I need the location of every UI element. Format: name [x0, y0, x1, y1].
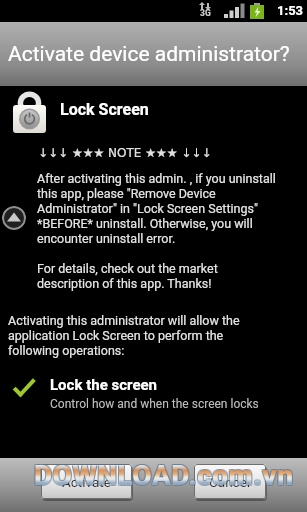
staticText: DOWNLOAD.com.vn	[33, 460, 293, 493]
staticText: following operations:	[8, 343, 125, 358]
staticText: Lock the screen	[50, 376, 157, 394]
staticText: Lock Screen	[60, 100, 149, 119]
button[interactable]: Activate	[41, 464, 132, 499]
staticText: For details, check out the market	[37, 261, 218, 276]
staticText: Administrator" in "Lock Screen Settings"	[37, 201, 258, 216]
staticText: description of this app. Thanks!	[37, 276, 212, 291]
button[interactable]	[2, 206, 26, 230]
staticText: Activate	[62, 474, 111, 490]
staticText: Activate device administrator?	[8, 42, 290, 67]
staticText: DOWNLOAD.com.vn	[35, 460, 295, 493]
staticText: DOWNLOAD.com.vn	[35, 458, 295, 491]
staticText: Control how and when the screen locks	[50, 397, 259, 411]
staticText: After activating this admin. , if you un…	[37, 171, 276, 186]
staticText: 3G	[200, 8, 211, 18]
staticText: DOWNLOAD.com.vn	[33, 458, 293, 491]
staticText: ↓↓↓ ★★★ NOTE ★★★ ↓↓↓	[38, 146, 212, 160]
staticText: *BEFORE* uninstall. Otherwise, you will	[37, 216, 253, 231]
staticText: DOWNLOAD.com.vn	[34, 459, 294, 492]
staticText: application Lock Screen to perform the	[8, 328, 224, 343]
staticText: 1:53	[277, 3, 304, 18]
staticText: Cancel	[209, 474, 251, 490]
staticText: encounter uninstall error.	[37, 231, 176, 246]
button[interactable]: Cancel	[194, 464, 266, 499]
staticText: this app, please "Remove Device	[37, 186, 216, 201]
staticText: Activating this administrator will allow…	[8, 313, 240, 328]
